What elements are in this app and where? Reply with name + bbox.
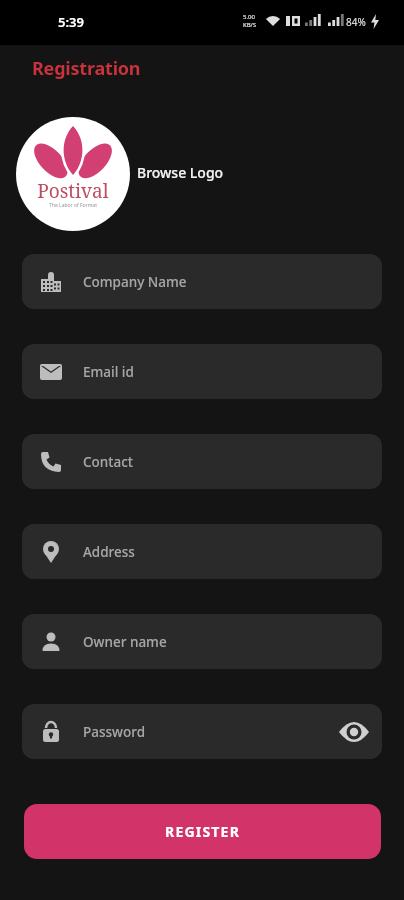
staticText: Registration — [32, 56, 141, 81]
staticText: Email id — [83, 363, 134, 381]
button[interactable]: Owner name — [22, 614, 382, 669]
staticText: 5.00 — [243, 13, 255, 21]
button[interactable]: Address — [22, 524, 382, 579]
button[interactable]: Postival — [16, 117, 130, 231]
staticText: 5:39 — [58, 13, 84, 31]
staticText: Company Name — [83, 273, 187, 291]
staticText: Password — [83, 723, 146, 741]
staticText: KB/S — [243, 21, 257, 29]
button[interactable]: Contact — [22, 434, 382, 489]
button[interactable]: Password — [22, 704, 382, 759]
button[interactable]: Browse Logo — [137, 163, 224, 182]
button[interactable]: REGISTER — [24, 804, 381, 859]
button[interactable]: Email id — [22, 344, 382, 399]
staticText: 84% — [346, 15, 366, 29]
staticText: The Labor of Format — [16, 202, 130, 209]
staticText: Owner name — [83, 633, 167, 651]
staticText: REGISTER — [165, 822, 241, 841]
staticText: Contact — [83, 453, 133, 471]
button[interactable]: Company Name — [22, 254, 382, 309]
staticText: Postival — [16, 178, 130, 204]
staticText: Address — [83, 543, 135, 561]
